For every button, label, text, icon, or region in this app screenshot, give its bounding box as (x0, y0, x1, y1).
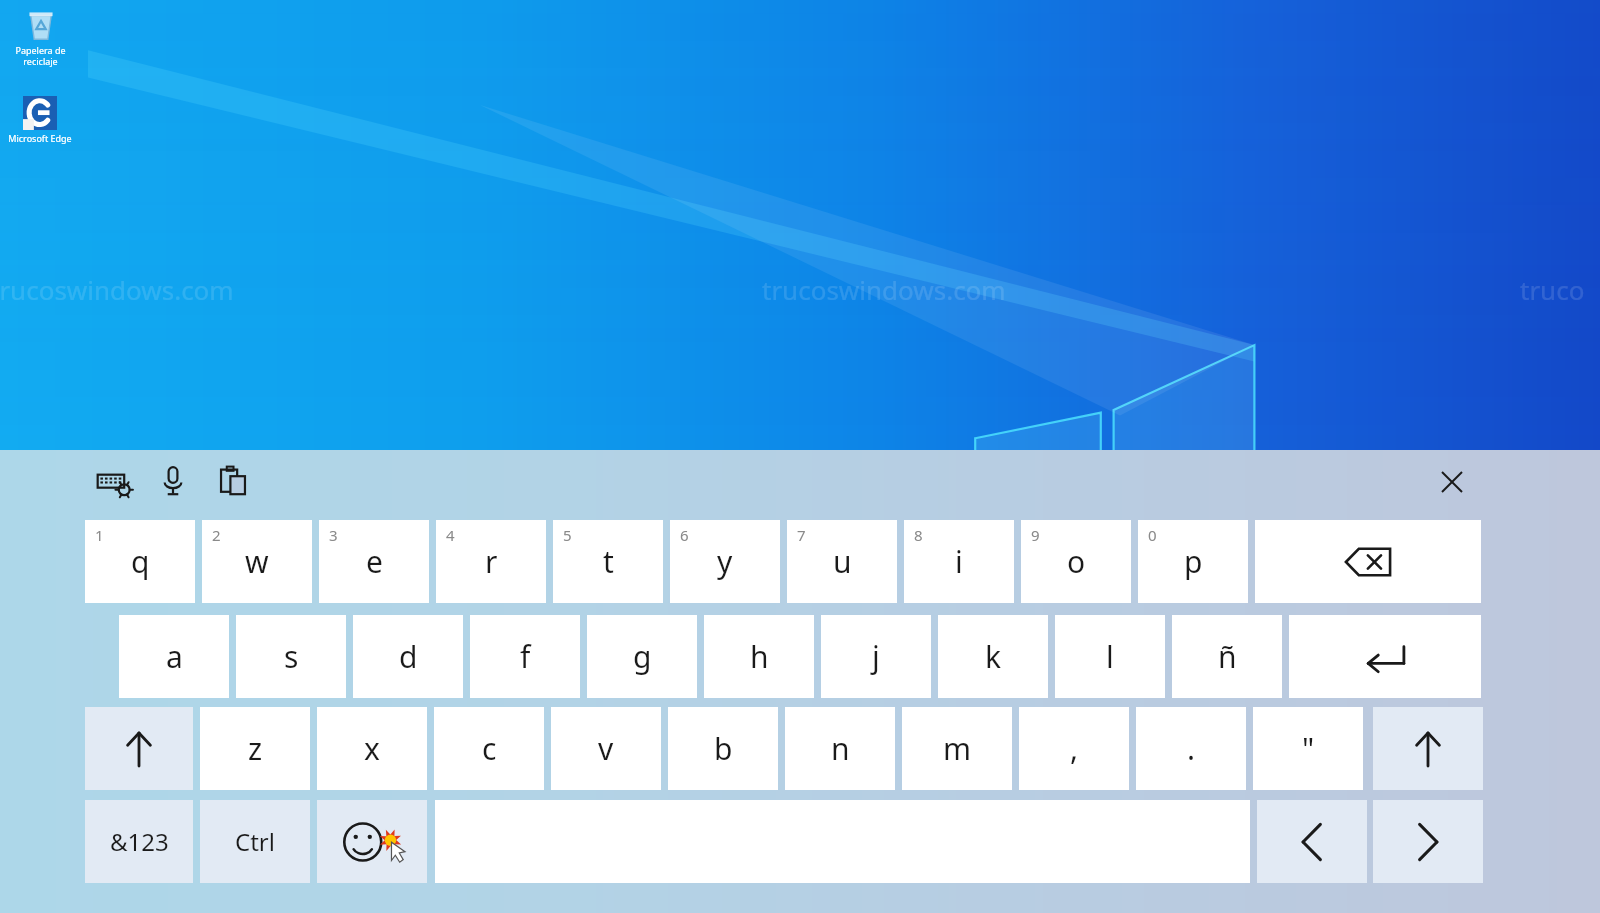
staticText: o (1067, 541, 1086, 582)
button[interactable]: h (704, 615, 814, 698)
staticText: 2 (212, 525, 221, 545)
staticText: a (166, 636, 183, 677)
staticText: trucoswindows.com (0, 272, 234, 307)
staticText: m (943, 728, 972, 769)
button[interactable]: v (551, 707, 661, 790)
button[interactable]: Entrar (1289, 615, 1481, 698)
staticText: x (364, 728, 380, 769)
staticText: 3 (329, 525, 338, 545)
staticText: 4 (446, 525, 455, 545)
button[interactable]: a (119, 615, 229, 698)
button[interactable]: Derecha (1373, 800, 1483, 883)
button[interactable]: Papelera de reciclaje (4, 8, 76, 76)
staticText: ñ (1218, 636, 1237, 677)
button[interactable]: z (200, 707, 310, 790)
staticText: z (248, 728, 263, 769)
button[interactable]: 0 (1138, 520, 1248, 603)
button[interactable]: " (1253, 707, 1363, 790)
staticText: d (399, 636, 418, 677)
button[interactable]: . (1136, 707, 1246, 790)
button[interactable]: x (317, 707, 427, 790)
button[interactable]: Mayúsculas (1373, 707, 1483, 790)
button[interactable]: Mayúsculas (85, 707, 193, 790)
button[interactable]: g (587, 615, 697, 698)
staticText: 9 (1031, 525, 1040, 545)
button[interactable]: c (434, 707, 544, 790)
button[interactable]: l (1055, 615, 1165, 698)
staticText: i (955, 541, 963, 582)
staticText: &123 (110, 825, 169, 858)
button[interactable]: Emoji (317, 800, 427, 883)
button[interactable]: 1 (85, 520, 195, 603)
button[interactable]: 8 (904, 520, 1014, 603)
staticText: 7 (797, 525, 806, 545)
staticText: p (1184, 541, 1203, 582)
staticText: Ctrl (235, 825, 275, 858)
staticText: y (717, 541, 733, 582)
staticText: t (603, 541, 614, 582)
button[interactable]: 4 (436, 520, 546, 603)
staticText: e (366, 541, 383, 582)
button[interactable]: m (902, 707, 1012, 790)
staticText: 6 (680, 525, 689, 545)
button[interactable]: Cerrar (1432, 462, 1472, 502)
button[interactable]: Izquierda (1257, 800, 1367, 883)
staticText: . (1187, 728, 1196, 769)
staticText: f (520, 636, 531, 677)
staticText: l (1106, 636, 1114, 677)
button[interactable]: , (1019, 707, 1129, 790)
button[interactable]: s (236, 615, 346, 698)
staticText: k (985, 636, 1002, 677)
staticText: truco (1520, 272, 1585, 307)
button[interactable]: ñ (1172, 615, 1282, 698)
staticText: g (633, 636, 652, 677)
staticText: h (750, 636, 769, 677)
button[interactable]: &123 (85, 800, 193, 883)
staticText: Papelera de reciclaje (15, 44, 66, 67)
button[interactable]: f (470, 615, 580, 698)
button[interactable]: Ctrl (200, 800, 310, 883)
staticText: c (482, 728, 497, 769)
staticText: " (1302, 728, 1315, 769)
button[interactable]: n (785, 707, 895, 790)
button[interactable]: Opciones de teclado (95, 464, 133, 502)
button[interactable]: 9 (1021, 520, 1131, 603)
staticText: n (831, 728, 850, 769)
staticText: r (485, 541, 498, 582)
staticText: q (131, 541, 150, 582)
staticText: b (714, 728, 733, 769)
staticText: 1 (95, 525, 104, 545)
button[interactable]: d (353, 615, 463, 698)
button[interactable]: j (821, 615, 931, 698)
button[interactable]: 2 (202, 520, 312, 603)
staticText: 0 (1148, 525, 1157, 545)
button[interactable]: 6 (670, 520, 780, 603)
staticText: Microsoft Edge (8, 132, 72, 144)
staticText: 5 (563, 525, 572, 545)
button[interactable]: 3 (319, 520, 429, 603)
staticText: v (598, 728, 614, 769)
staticText: j (872, 636, 880, 677)
button[interactable]: 5 (553, 520, 663, 603)
staticText: 8 (914, 525, 923, 545)
button[interactable]: Microsoft Edge (4, 96, 76, 158)
button[interactable]: Dictado por voz (154, 462, 192, 500)
button[interactable]: 7 (787, 520, 897, 603)
button[interactable]: Portapapeles (214, 462, 252, 500)
staticText: , (1070, 728, 1079, 769)
button[interactable]: Retroceso (1255, 520, 1481, 603)
staticText: w (245, 541, 269, 582)
staticText: u (833, 541, 852, 582)
staticText: trucoswindows.com (762, 272, 1006, 307)
button[interactable]: k (938, 615, 1048, 698)
button[interactable]: b (668, 707, 778, 790)
staticText: s (284, 636, 299, 677)
